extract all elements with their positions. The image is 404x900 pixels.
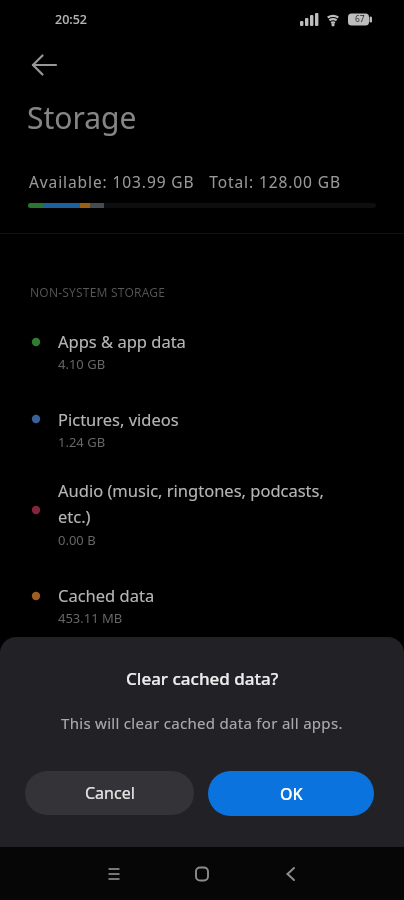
button[interactable] bbox=[178, 852, 226, 900]
staticText: Apps & app data bbox=[58, 330, 186, 352]
staticText: Storage bbox=[27, 97, 137, 138]
button[interactable]: Cancel bbox=[25, 771, 194, 815]
button[interactable]: Apps & app data bbox=[0, 318, 404, 382]
button[interactable]: OK bbox=[208, 771, 374, 816]
staticText: 67 bbox=[355, 13, 365, 25]
button[interactable]: Cached data bbox=[0, 572, 404, 636]
button[interactable]: Audio (music, ringtones, podcasts, bbox=[0, 467, 404, 557]
staticText: Available: 103.99 GB Total: 128.00 GB bbox=[29, 171, 341, 192]
button[interactable] bbox=[267, 852, 315, 900]
staticText: Audio (music, ringtones, podcasts, bbox=[58, 479, 324, 501]
staticText: Clear cached data? bbox=[126, 667, 279, 690]
staticText: Cancel bbox=[85, 782, 135, 804]
staticText: 20:52 bbox=[55, 11, 88, 28]
staticText: etc.) bbox=[58, 505, 91, 527]
button[interactable]: Pictures, videos bbox=[0, 396, 404, 460]
staticText: 1.24 GB bbox=[58, 433, 106, 451]
staticText: This will clear cached data for all apps… bbox=[61, 713, 343, 733]
staticText: 453.11 MB bbox=[58, 609, 123, 627]
staticText: NON-SYSTEM STORAGE bbox=[30, 284, 166, 300]
staticText: Cached data bbox=[58, 584, 155, 606]
staticText: Pictures, videos bbox=[58, 408, 179, 430]
staticText: 0.00 B bbox=[58, 531, 96, 549]
staticText: OK bbox=[280, 783, 303, 805]
staticText: 4.10 GB bbox=[58, 355, 106, 373]
button[interactable] bbox=[90, 852, 138, 900]
button[interactable] bbox=[16, 44, 60, 86]
